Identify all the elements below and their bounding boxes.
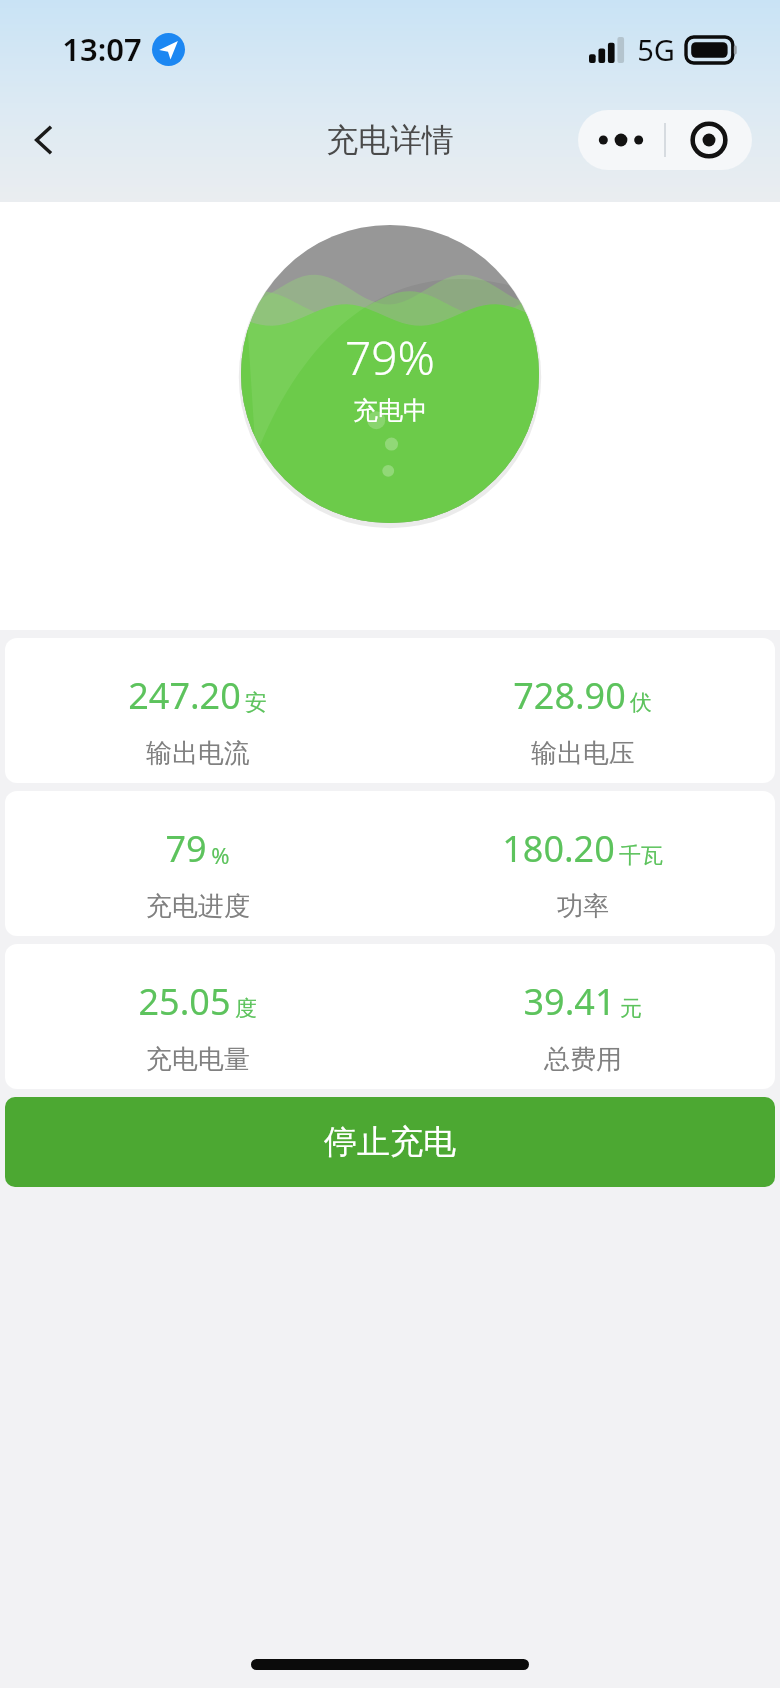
staticText: 247.20: [128, 671, 241, 720]
staticText: 输出电流: [146, 737, 250, 770]
staticText: 总费用: [544, 1043, 622, 1076]
button[interactable]: 247.20: [5, 638, 775, 783]
staticText: 充电详情: [326, 120, 454, 160]
staticText: 充电进度: [146, 890, 250, 923]
staticText: 180.20: [502, 824, 615, 873]
staticText: 功率: [557, 890, 609, 923]
button[interactable]: 25.05: [5, 944, 775, 1089]
button[interactable]: 79: [5, 791, 775, 936]
staticText: 千瓦: [619, 842, 663, 870]
staticText: 13:07: [62, 28, 142, 70]
button[interactable]: Close: [666, 110, 752, 170]
button[interactable]: 停止充电: [5, 1097, 775, 1187]
staticText: %: [211, 840, 230, 870]
staticText: 728.90: [513, 671, 626, 720]
button[interactable]: Back: [14, 109, 76, 171]
staticText: 39.41: [523, 977, 616, 1026]
staticText: 度: [235, 995, 257, 1023]
button[interactable]: More: [578, 110, 664, 170]
staticText: 25.05: [138, 977, 231, 1026]
staticText: 79%: [345, 326, 435, 389]
staticText: 79: [165, 824, 207, 873]
staticText: 充电中: [353, 395, 428, 426]
staticText: 5G: [637, 30, 675, 69]
staticText: 停止充电: [324, 1121, 456, 1163]
staticText: 元: [620, 995, 642, 1023]
staticText: 伏: [630, 689, 652, 717]
staticText: 充电电量: [146, 1043, 250, 1076]
staticText: 安: [245, 689, 267, 717]
staticText: 输出电压: [531, 737, 635, 770]
